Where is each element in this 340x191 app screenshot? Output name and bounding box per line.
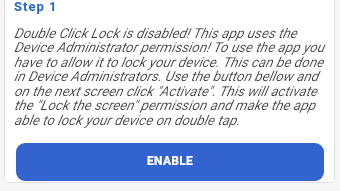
staticText: able to lock your device on double tap. xyxy=(14,112,240,128)
staticText: Device Administrator permission! To use … xyxy=(14,39,325,55)
staticText: Double Click Lock is disabled! This app … xyxy=(14,25,297,41)
staticText: have to allow it to lock your device. Th… xyxy=(14,54,324,70)
staticText: ENABLE xyxy=(147,154,194,168)
staticText: in Device Administrators. Use the button… xyxy=(14,68,319,84)
button[interactable]: ENABLE xyxy=(16,143,324,181)
staticText: on the next screen click "Activate". Thi… xyxy=(14,83,318,99)
staticText: the "Lock the screen" permission and mak… xyxy=(14,97,316,113)
staticText: Step 1 xyxy=(14,0,58,14)
